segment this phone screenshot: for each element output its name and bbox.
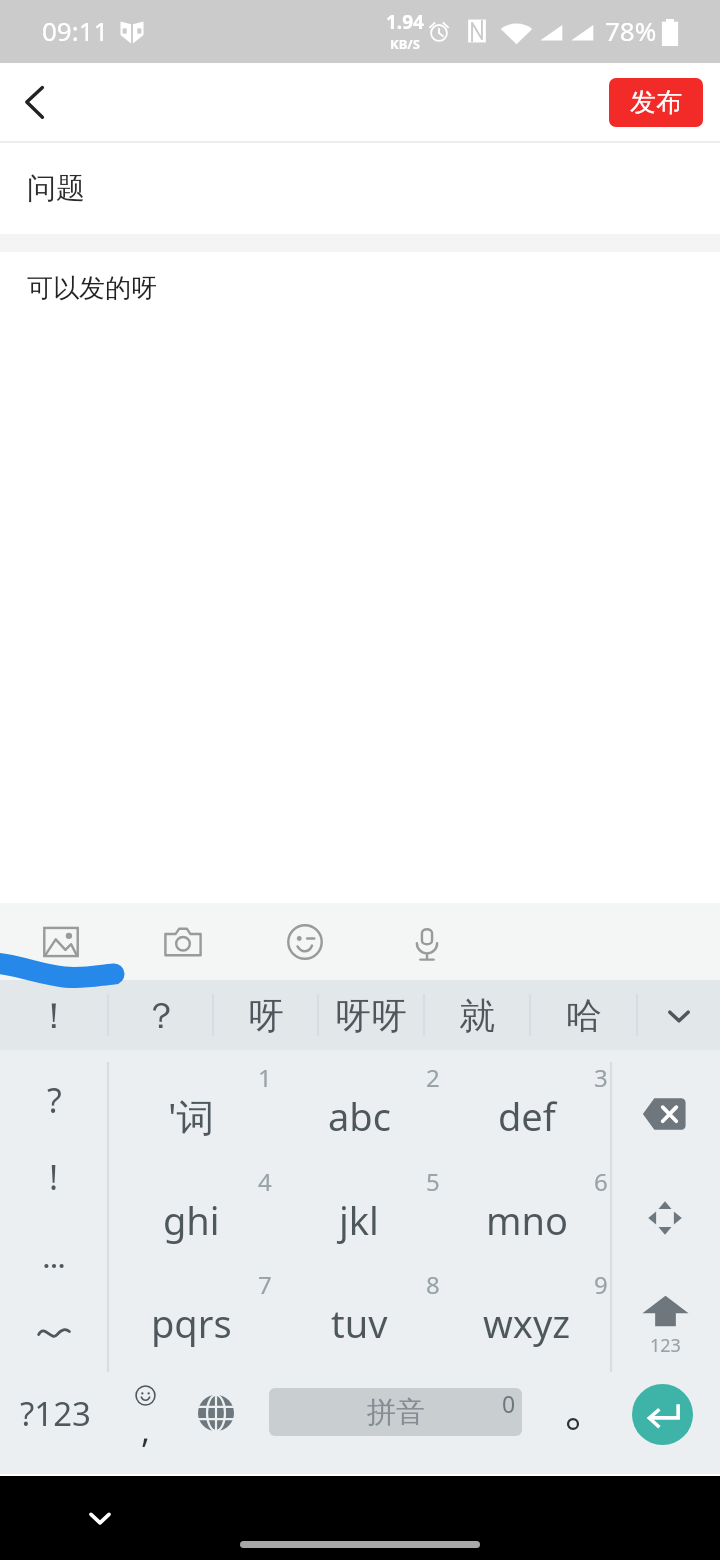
staticText: 8 (426, 1268, 440, 1301)
button[interactable]: ！ (0, 980, 108, 1050)
staticText: '词 (168, 1090, 215, 1142)
staticText: 5 (426, 1165, 440, 1198)
button[interactable]: Back (0, 63, 76, 141)
button[interactable]: 8 (275, 1269, 443, 1372)
button[interactable]: 4 (108, 1166, 275, 1269)
staticText: wxyz (483, 1297, 571, 1349)
button[interactable]: 6 (443, 1166, 611, 1269)
staticText: ！ (36, 993, 72, 1038)
button[interactable]: 2 (275, 1062, 443, 1166)
button[interactable]: ？ (108, 980, 213, 1050)
button[interactable]: Voice input (366, 903, 488, 980)
staticText: 就 (459, 993, 495, 1038)
staticText: 09:11 (42, 13, 109, 48)
button[interactable]: 9 (443, 1269, 611, 1372)
button[interactable]: 3 (443, 1062, 611, 1166)
staticText: ？ (143, 993, 179, 1038)
button[interactable]: Emoji (244, 903, 366, 980)
button[interactable]: Hide keyboard (70, 1488, 130, 1548)
staticText: 0 (502, 1388, 516, 1419)
button[interactable]: Cursor arrows (611, 1166, 720, 1269)
staticText: , (141, 1407, 151, 1453)
button[interactable]: Backspace (611, 1062, 720, 1166)
staticText: 拼音 (367, 1394, 425, 1431)
button[interactable]: 问题 (0, 143, 720, 234)
staticText: ? (47, 1077, 62, 1123)
staticText: 7 (258, 1268, 272, 1301)
button[interactable]: Enter (632, 1384, 693, 1445)
button[interactable]: Add image (0, 903, 122, 980)
staticText: jkl (339, 1194, 379, 1246)
staticText: 2 (426, 1061, 440, 1094)
button[interactable]: More candidates (637, 980, 720, 1050)
button[interactable]: 7 (108, 1269, 275, 1372)
button[interactable]: Emoji and comma (108, 1372, 182, 1476)
button[interactable]: More symbols (0, 1216, 108, 1294)
staticText: 123 (650, 1333, 681, 1358)
staticText: 9 (594, 1268, 608, 1301)
button[interactable]: Shift (611, 1269, 720, 1372)
button[interactable]: Period (531, 1372, 615, 1476)
staticText: 发布 (630, 86, 682, 119)
staticText: 问题 (27, 170, 85, 207)
staticText: 3 (594, 1061, 608, 1094)
staticText: KB/S (390, 35, 420, 53)
button[interactable]: 发布 (609, 78, 703, 127)
staticText: mno (486, 1194, 569, 1246)
staticText: 6 (594, 1165, 608, 1198)
button[interactable]: 可以发的呀 (0, 252, 720, 903)
staticText: 哈 (566, 993, 602, 1038)
staticText: 呀呀 (335, 993, 407, 1038)
staticText: 1 (258, 1061, 272, 1094)
button[interactable]: 1 (108, 1062, 275, 1166)
staticText: 1.94 (386, 9, 424, 35)
staticText: tuv (331, 1297, 388, 1349)
staticText: def (498, 1090, 556, 1142)
staticText: 可以发的呀 (27, 272, 157, 305)
button[interactable]: 呀 (213, 980, 318, 1050)
button[interactable]: Change input language (182, 1372, 250, 1476)
staticText: ! (49, 1154, 59, 1200)
staticText: 4 (258, 1165, 272, 1198)
button[interactable]: 哈 (530, 980, 637, 1050)
button[interactable]: Exclamation mark (0, 1139, 108, 1216)
button[interactable]: Question mark (0, 1062, 108, 1139)
button[interactable]: Take photo (122, 903, 244, 980)
button[interactable]: 呀呀 (318, 980, 424, 1050)
staticText: ghi (163, 1194, 220, 1246)
staticText: 78% (605, 13, 657, 48)
button[interactable]: ?123 (0, 1372, 108, 1476)
staticText: 呀 (248, 993, 284, 1038)
button[interactable]: 拼音 (269, 1388, 522, 1436)
button[interactable]: Tilde (0, 1294, 108, 1372)
staticText: ?123 (20, 1391, 91, 1436)
button[interactable]: 5 (275, 1166, 443, 1269)
staticText: abc (328, 1090, 391, 1142)
staticText: pqrs (151, 1297, 232, 1349)
button[interactable]: 就 (424, 980, 530, 1050)
